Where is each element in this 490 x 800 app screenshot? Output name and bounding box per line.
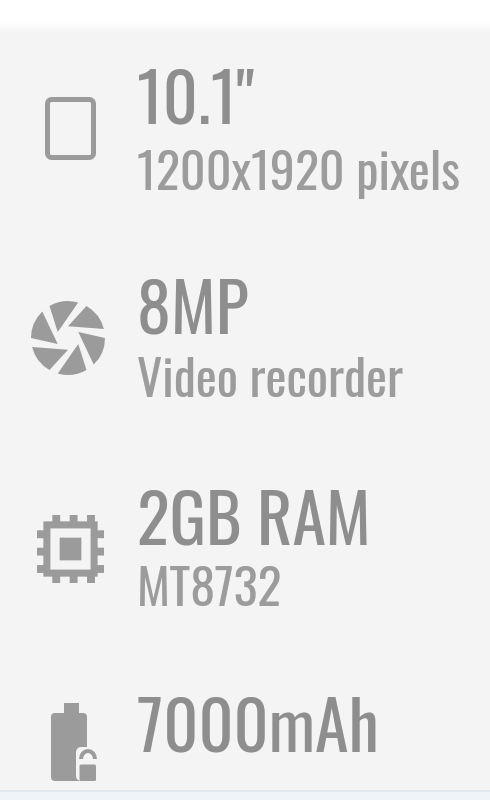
- button[interactable]: Memory: [0, 442, 490, 642]
- staticText: 8MP: [137, 253, 249, 354]
- other: Camera: [31, 301, 105, 375]
- other: Display size: [45, 97, 96, 160]
- other: Battery: [51, 703, 98, 781]
- other: Memory: [37, 515, 104, 583]
- button[interactable]: Camera: [0, 231, 490, 431]
- staticText: 7000mAh: [137, 671, 379, 772]
- button[interactable]: Display size: [0, 21, 490, 221]
- staticText: MT8732: [137, 546, 282, 620]
- button[interactable]: Battery: [0, 649, 490, 800]
- staticText: 1200x1920 pixels: [137, 130, 460, 204]
- staticText: Video recorder: [137, 337, 404, 411]
- staticText: 10.1": [137, 43, 255, 144]
- staticText: 2GB RAM: [137, 464, 371, 565]
